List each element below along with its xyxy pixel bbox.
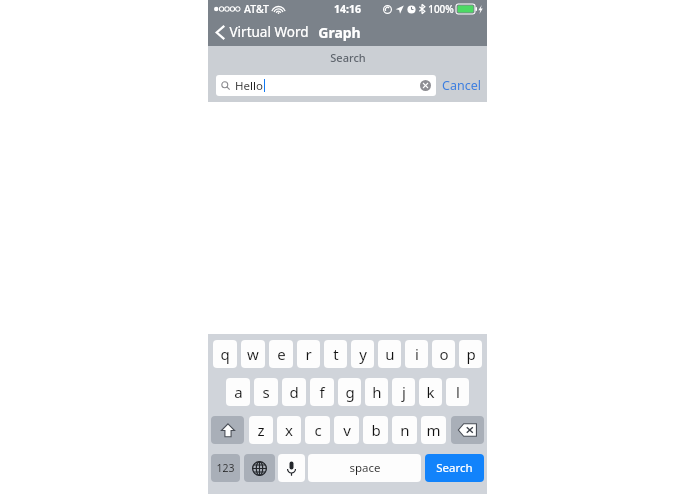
staticText: q <box>220 344 230 364</box>
button[interactable]: Backspace <box>451 416 484 444</box>
button[interactable]: x <box>277 416 301 444</box>
button[interactable]: t <box>324 340 347 368</box>
staticText: Graph <box>318 23 361 42</box>
staticText: Search <box>436 460 473 476</box>
button[interactable]: m <box>421 416 446 444</box>
button[interactable]: l <box>446 378 469 406</box>
button[interactable]: d <box>282 378 306 406</box>
button[interactable]: v <box>334 416 359 444</box>
button[interactable]: p <box>459 340 482 368</box>
button[interactable]: s <box>254 378 278 406</box>
staticText: d <box>289 382 299 402</box>
button[interactable]: Clear text <box>420 80 431 91</box>
button[interactable]: Search <box>425 454 484 482</box>
staticText: 14:16 <box>334 2 361 16</box>
button[interactable]: y <box>351 340 374 368</box>
staticText: l <box>456 382 460 402</box>
staticText: e <box>277 344 286 364</box>
button[interactable]: c <box>305 416 330 444</box>
button[interactable]: u <box>378 340 401 368</box>
button[interactable]: k <box>419 378 442 406</box>
staticText: 123 <box>216 461 235 475</box>
staticText: y <box>359 344 367 364</box>
button[interactable]: Hello <box>216 75 436 96</box>
staticText: a <box>234 382 243 402</box>
button[interactable]: w <box>241 340 265 368</box>
staticText: 100% <box>428 2 454 16</box>
button[interactable]: o <box>432 340 455 368</box>
button[interactable]: 123 <box>211 454 240 482</box>
staticText: m <box>426 420 441 440</box>
button[interactable]: Back <box>208 19 315 45</box>
button[interactable]: f <box>310 378 334 406</box>
staticText: v <box>343 420 351 440</box>
button[interactable]: b <box>363 416 388 444</box>
staticText: n <box>400 420 410 440</box>
staticText: w <box>247 344 259 364</box>
button[interactable]: q <box>213 340 237 368</box>
button[interactable]: n <box>392 416 417 444</box>
staticText: x <box>285 420 293 440</box>
staticText: o <box>439 344 449 364</box>
other: Back <box>216 25 225 40</box>
staticText: AT&T <box>244 2 269 16</box>
staticText: space <box>349 460 381 476</box>
button[interactable]: Switch keyboard <box>244 454 275 482</box>
staticText: r <box>305 344 312 364</box>
button[interactable]: r <box>297 340 320 368</box>
staticText: Search <box>330 50 366 65</box>
button[interactable]: z <box>249 416 273 444</box>
staticText: Hello <box>235 78 263 94</box>
staticText: f <box>319 382 325 402</box>
staticText: Virtual Word <box>229 23 309 41</box>
button[interactable]: space <box>308 454 421 482</box>
button[interactable]: Dictation <box>278 454 305 482</box>
button[interactable]: e <box>269 340 293 368</box>
button[interactable]: j <box>392 378 415 406</box>
staticText: k <box>426 382 435 402</box>
staticText: j <box>402 382 406 402</box>
staticText: b <box>371 420 381 440</box>
button[interactable]: i <box>405 340 428 368</box>
staticText: Cancel <box>442 77 481 94</box>
staticText: h <box>372 382 382 402</box>
staticText: z <box>257 420 265 440</box>
button[interactable]: g <box>338 378 361 406</box>
staticText: s <box>262 382 270 402</box>
staticText: p <box>466 344 476 364</box>
staticText: u <box>385 344 395 364</box>
button[interactable]: h <box>365 378 388 406</box>
staticText: g <box>345 382 355 402</box>
button[interactable]: a <box>226 378 250 406</box>
button[interactable]: Shift <box>211 416 244 444</box>
button[interactable]: Cancel <box>436 73 487 98</box>
staticText: i <box>415 344 419 364</box>
staticText: t <box>333 344 339 364</box>
staticText: c <box>314 420 322 440</box>
